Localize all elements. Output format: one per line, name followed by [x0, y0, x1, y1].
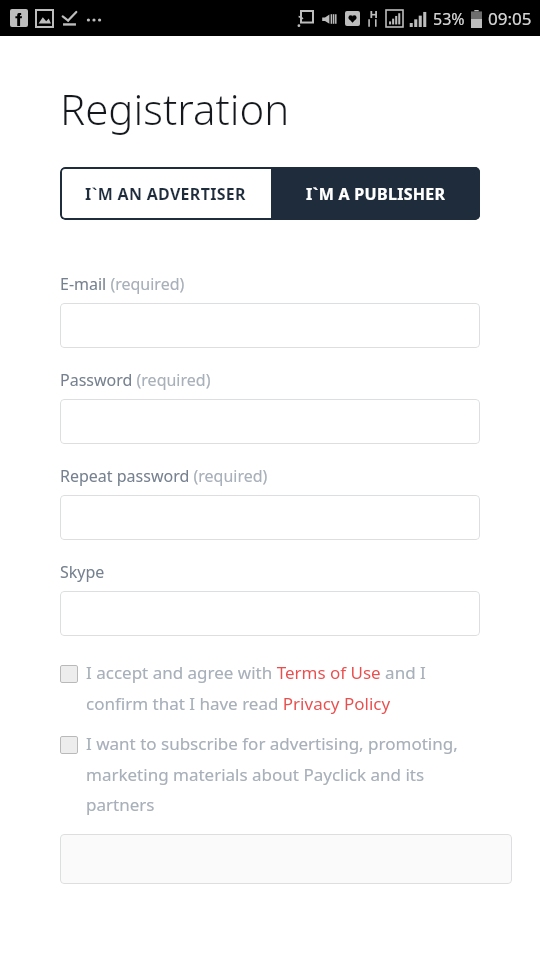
staticText: Registration: [60, 80, 290, 137]
button[interactable]: I accept and agree with Terms of Use and…: [60, 661, 480, 715]
button[interactable]: [60, 495, 480, 540]
staticText: E-mail (required): [60, 273, 185, 295]
staticText: 53%: [433, 8, 465, 30]
button[interactable]: [60, 303, 480, 348]
staticText: I accept and agree with Terms of Use and…: [86, 661, 480, 715]
button[interactable]: I want to subscribe for advertising, pro…: [60, 732, 480, 816]
button[interactable]: [60, 399, 480, 444]
button[interactable]: I`M AN ADVERTISER: [60, 167, 271, 220]
staticText: Password (required): [60, 369, 211, 391]
staticText: I`M AN ADVERTISER: [85, 183, 246, 205]
button[interactable]: I`M A PUBLISHER: [271, 167, 480, 220]
staticText: Repeat password (required): [60, 465, 268, 487]
staticText: Skype: [60, 561, 105, 583]
staticText: I`M A PUBLISHER: [306, 183, 446, 205]
button[interactable]: [60, 591, 480, 636]
staticText: 09:05: [488, 7, 532, 30]
button[interactable]: Captcha: [60, 834, 512, 884]
staticText: I want to subscribe for advertising, pro…: [86, 732, 480, 816]
